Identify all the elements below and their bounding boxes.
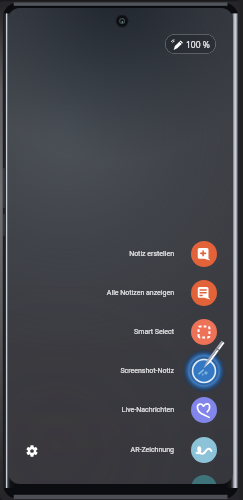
staticText: AR-Zeichnung xyxy=(130,446,174,454)
button[interactable]: Screenshot-Notiz xyxy=(8,351,233,390)
staticText: Notiz erstellen xyxy=(129,250,174,258)
button[interactable]: Live-Nachrichten xyxy=(8,390,233,429)
button[interactable] xyxy=(191,475,217,484)
staticText: Alle Notizen anzeigen xyxy=(106,289,174,297)
button[interactable]: AR-Zeichnung xyxy=(8,430,233,469)
staticText: Smart Select xyxy=(134,328,174,336)
button[interactable]: Alle Notizen anzeigen xyxy=(8,273,233,312)
button[interactable]: 100 % xyxy=(165,34,216,54)
button[interactable]: Notiz erstellen xyxy=(8,234,233,273)
button[interactable]: Smart Select xyxy=(8,312,233,351)
staticText: Live-Nachrichten xyxy=(121,406,174,414)
staticText: Screenshot-Notiz xyxy=(120,367,174,375)
staticText: 100 % xyxy=(186,39,210,51)
button[interactable]: Einstellungen xyxy=(19,438,45,464)
